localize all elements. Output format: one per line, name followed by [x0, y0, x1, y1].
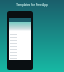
button[interactable] [9, 51, 31, 54]
button[interactable] [9, 33, 31, 36]
button[interactable] [9, 42, 31, 45]
button[interactable] [9, 54, 31, 57]
staticText: Templates for Free App [0, 3, 64, 7]
button[interactable] [9, 45, 31, 48]
button[interactable] [9, 57, 31, 60]
button[interactable] [9, 39, 31, 42]
button[interactable] [9, 36, 31, 39]
button[interactable] [9, 48, 31, 51]
